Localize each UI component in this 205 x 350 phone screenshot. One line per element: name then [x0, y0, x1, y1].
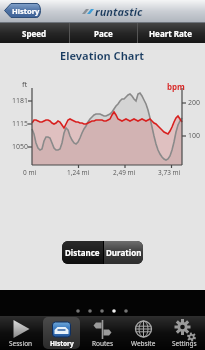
- staticText: Session: [9, 339, 33, 348]
- button[interactable]: Duration: [104, 241, 143, 264]
- staticText: 1181: [12, 96, 29, 106]
- button[interactable]: Speed: [0, 23, 69, 43]
- button[interactable]: Distance: [62, 241, 103, 264]
- staticText: Pace: [94, 28, 113, 39]
- button[interactable]: History: [41, 316, 82, 350]
- staticText: 3,73 mi: [158, 168, 181, 177]
- staticText: Routes: [92, 339, 114, 348]
- staticText: 1115: [12, 119, 29, 129]
- staticText: Speed: [22, 28, 47, 39]
- staticText: History: [12, 6, 40, 16]
- button[interactable]: Pace: [69, 23, 137, 43]
- staticText: 100: [188, 131, 201, 141]
- staticText: Website: [131, 339, 156, 348]
- button[interactable]: Session: [0, 316, 41, 350]
- staticText: 1050: [12, 142, 29, 152]
- staticText: 0 mi: [23, 168, 37, 177]
- button[interactable]: Routes: [82, 316, 123, 350]
- staticText: 1,24 mi: [67, 168, 90, 177]
- staticText: ft: [22, 79, 28, 89]
- staticText: History: [50, 339, 74, 348]
- staticText: Elevation Chart: [60, 48, 145, 63]
- staticText: Duration: [106, 247, 142, 258]
- staticText: 2,49 mi: [113, 168, 136, 177]
- staticText: runtastic: [95, 4, 143, 19]
- staticText: Distance: [65, 247, 100, 258]
- staticText: 200: [188, 98, 201, 108]
- staticText: bpm: [167, 81, 185, 92]
- button[interactable]: Heart Rate: [137, 23, 205, 43]
- staticText: Heart Rate: [149, 28, 193, 39]
- button[interactable]: Website: [123, 316, 164, 350]
- button[interactable]: History: [4, 3, 41, 18]
- staticText: Settings: [172, 339, 197, 348]
- button[interactable]: Settings: [164, 316, 205, 350]
